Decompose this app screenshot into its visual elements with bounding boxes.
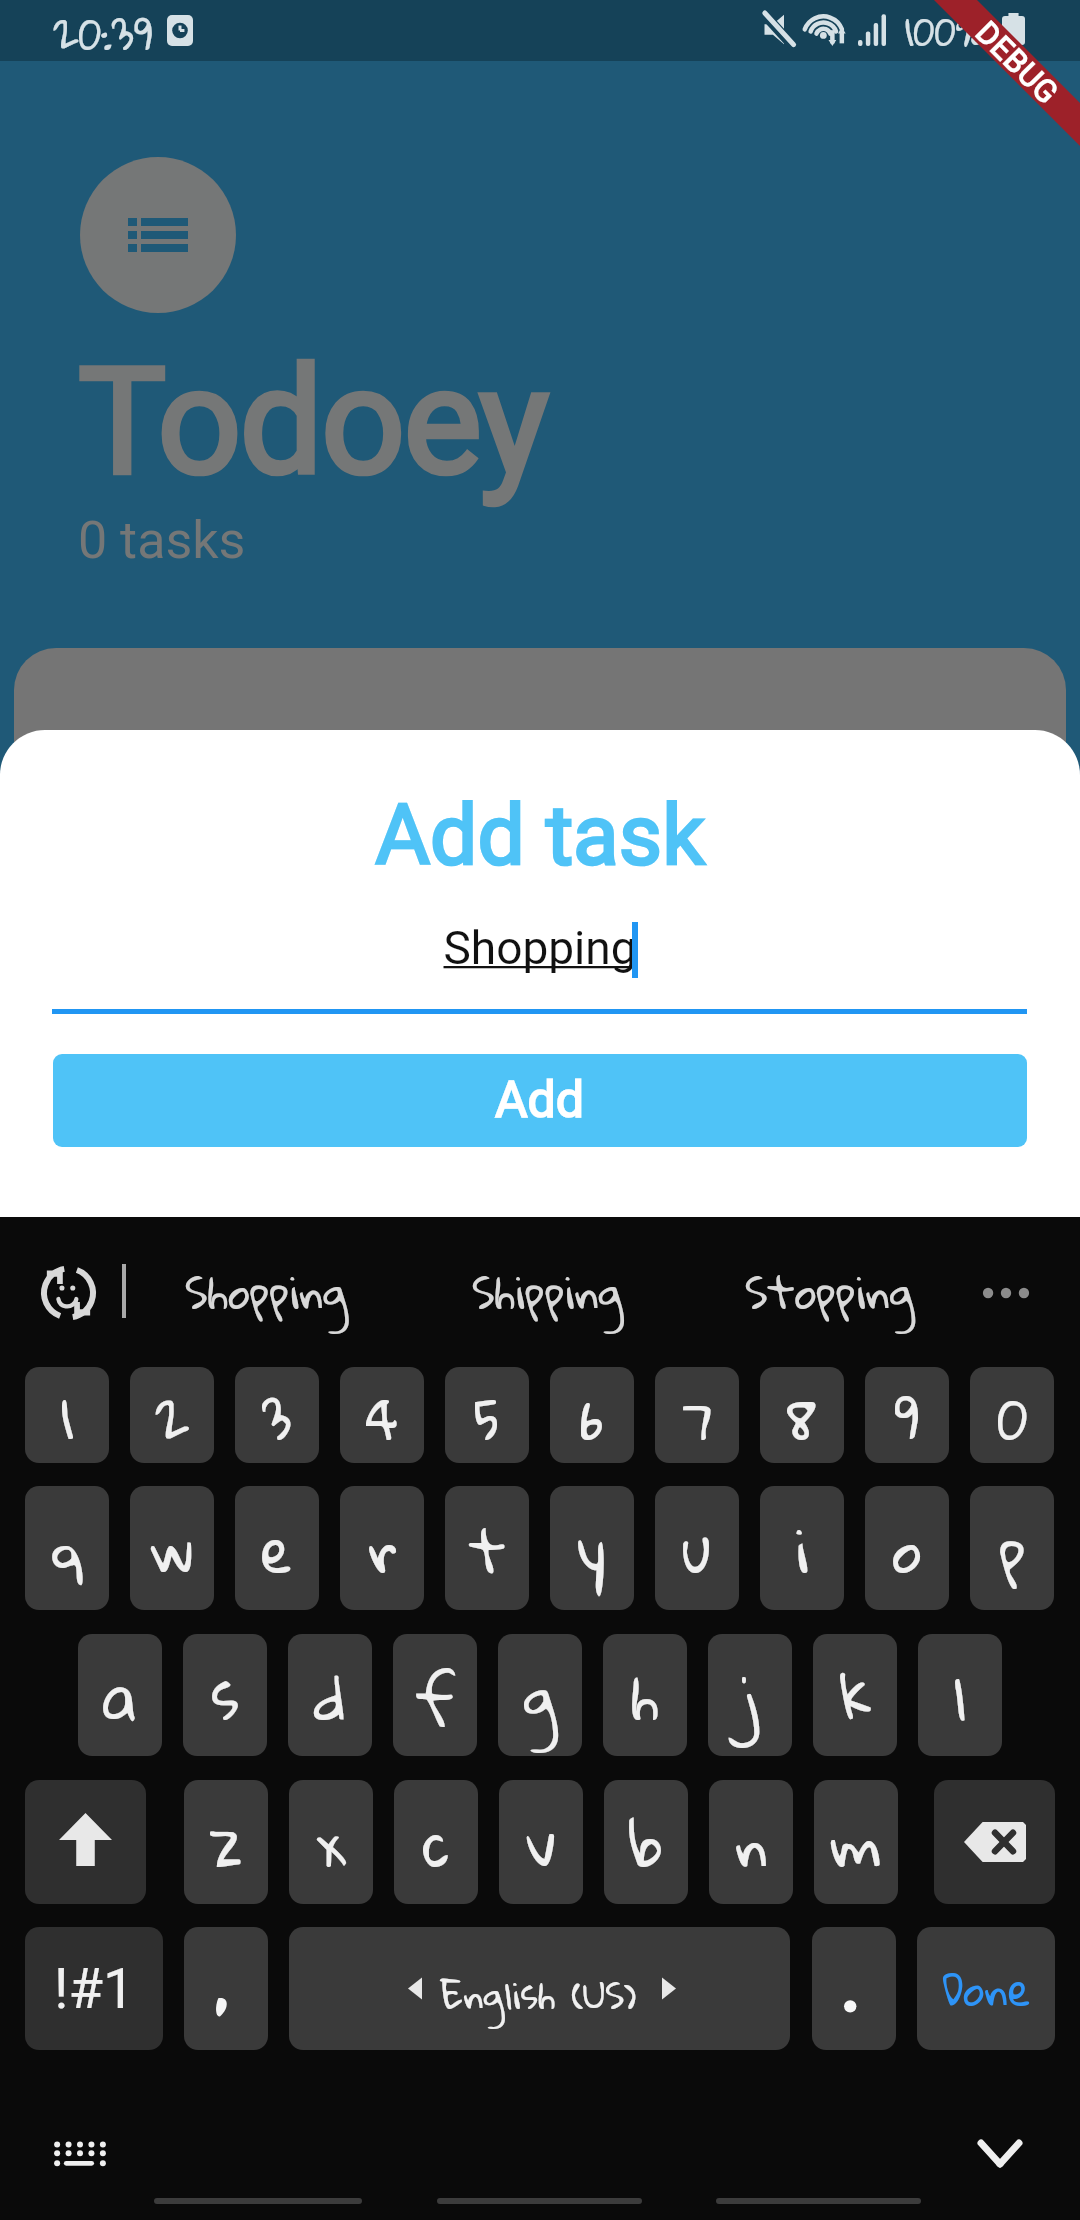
- button[interactable]: Shipping: [408, 1241, 688, 1341]
- button[interactable]: i: [760, 1486, 844, 1610]
- button[interactable]: p: [970, 1486, 1054, 1610]
- button[interactable]: Stopping: [690, 1241, 970, 1341]
- staticText: 4: [366, 1367, 398, 1463]
- staticText: 100%: [905, 0, 983, 56]
- staticText: Shopping: [0, 921, 1080, 975]
- staticText: x: [317, 1785, 345, 1900]
- button[interactable]: App icon: [80, 157, 236, 313]
- staticText: 0: [997, 1367, 1028, 1463]
- button[interactable]: Period: [812, 1927, 896, 2050]
- staticText: y: [578, 1491, 606, 1606]
- staticText: j: [741, 1638, 759, 1753]
- button[interactable]: e: [235, 1486, 319, 1610]
- staticText: v: [526, 1785, 557, 1900]
- button[interactable]: o: [865, 1486, 949, 1610]
- button[interactable]: Space: [289, 1927, 790, 2050]
- staticText: 20:39: [53, 0, 153, 56]
- staticText: Add: [495, 1071, 585, 1130]
- button[interactable]: Shopping: [126, 1241, 406, 1341]
- staticText: 5: [474, 1367, 500, 1463]
- button[interactable]: 5: [445, 1367, 529, 1463]
- staticText: c: [423, 1785, 450, 1900]
- button[interactable]: b: [604, 1780, 688, 1904]
- button[interactable]: 6: [550, 1367, 634, 1463]
- staticText: Stopping: [745, 1249, 915, 1334]
- staticText: 7: [682, 1367, 713, 1463]
- button[interactable]: f: [393, 1634, 477, 1756]
- staticText: Shopping: [185, 1249, 348, 1334]
- staticText: l: [953, 1638, 967, 1753]
- button[interactable]: c: [394, 1780, 478, 1904]
- button[interactable]: Emoji: [24, 1249, 112, 1337]
- button[interactable]: u: [655, 1486, 739, 1610]
- button[interactable]: y: [550, 1486, 634, 1610]
- button[interactable]: Hide keyboard: [955, 2108, 1045, 2198]
- button[interactable]: Backspace: [934, 1780, 1055, 1904]
- button[interactable]: j: [708, 1634, 792, 1756]
- button[interactable]: Shift: [25, 1780, 146, 1904]
- button[interactable]: n: [709, 1780, 793, 1904]
- staticText: !#1: [54, 1956, 135, 2022]
- button[interactable]: h: [603, 1634, 687, 1756]
- staticText: Done: [942, 1947, 1031, 2030]
- button[interactable]: Done: [917, 1927, 1055, 2050]
- button[interactable]: 1: [25, 1367, 109, 1463]
- button[interactable]: 7: [655, 1367, 739, 1463]
- button[interactable]: v: [499, 1780, 583, 1904]
- button[interactable]: t: [445, 1486, 529, 1610]
- button[interactable]: r: [340, 1486, 424, 1610]
- staticText: 8: [787, 1367, 817, 1463]
- staticText: 6: [580, 1367, 604, 1463]
- staticText: g: [524, 1638, 557, 1753]
- staticText: 0 tasks: [78, 510, 246, 571]
- staticText: 3: [262, 1367, 292, 1463]
- staticText: s: [211, 1638, 239, 1753]
- button[interactable]: 0: [970, 1367, 1054, 1463]
- staticText: m: [831, 1785, 881, 1900]
- staticText: 9: [894, 1367, 920, 1463]
- staticText: English (US): [440, 1958, 637, 2029]
- staticText: q: [51, 1491, 83, 1606]
- staticText: o: [892, 1491, 922, 1606]
- button[interactable]: s: [183, 1634, 267, 1756]
- staticText: i: [795, 1491, 809, 1606]
- staticText: t: [469, 1491, 506, 1606]
- button[interactable]: m: [814, 1780, 898, 1904]
- staticText: Todoey: [79, 336, 548, 509]
- staticText: e: [261, 1491, 293, 1606]
- button[interactable]: w: [130, 1486, 214, 1610]
- button[interactable]: More suggestions: [961, 1251, 1051, 1335]
- button[interactable]: 2: [130, 1367, 214, 1463]
- staticText: Shipping: [472, 1249, 624, 1334]
- button[interactable]: z: [184, 1780, 268, 1904]
- button[interactable]: 8: [760, 1367, 844, 1463]
- button[interactable]: Comma: [184, 1927, 268, 2050]
- staticText: r: [368, 1491, 397, 1606]
- button[interactable]: d: [288, 1634, 372, 1756]
- button[interactable]: k: [813, 1634, 897, 1756]
- button[interactable]: a: [78, 1634, 162, 1756]
- staticText: Add task: [0, 786, 1080, 884]
- button[interactable]: q: [25, 1486, 109, 1610]
- button[interactable]: Add: [53, 1054, 1027, 1147]
- staticText: z: [210, 1785, 243, 1900]
- staticText: h: [631, 1638, 659, 1753]
- button[interactable]: x: [289, 1780, 373, 1904]
- button[interactable]: g: [498, 1634, 582, 1756]
- staticText: p: [999, 1491, 1026, 1606]
- button[interactable]: l: [918, 1634, 1002, 1756]
- staticText: f: [415, 1638, 455, 1753]
- staticText: b: [628, 1785, 664, 1900]
- staticText: k: [839, 1638, 872, 1753]
- button[interactable]: !#1: [25, 1927, 163, 2050]
- staticText: DEBUG: [969, 14, 1066, 111]
- button[interactable]: 4: [340, 1367, 424, 1463]
- staticText: w: [151, 1491, 194, 1606]
- button[interactable]: 3: [235, 1367, 319, 1463]
- staticText: 2: [155, 1367, 189, 1463]
- staticText: 1: [61, 1367, 73, 1463]
- staticText: n: [735, 1785, 768, 1900]
- button[interactable]: Switch keyboard: [35, 2113, 125, 2193]
- button[interactable]: 9: [865, 1367, 949, 1463]
- staticText: d: [314, 1638, 346, 1753]
